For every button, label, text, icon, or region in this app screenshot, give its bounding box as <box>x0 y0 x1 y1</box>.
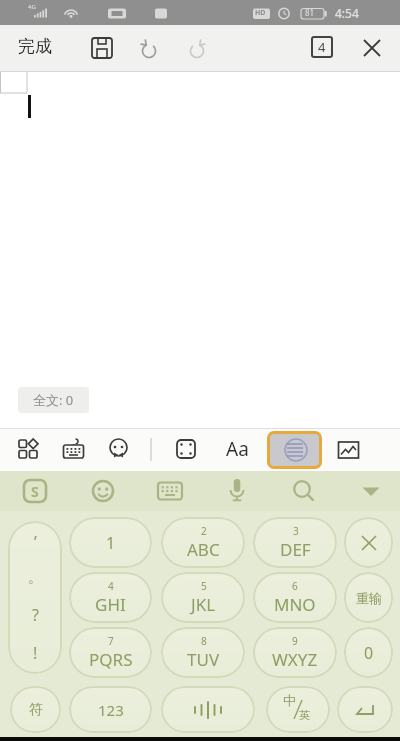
staticText: JKL <box>191 593 216 616</box>
button[interactable] <box>138 38 160 60</box>
staticText: 1 <box>106 532 116 554</box>
button[interactable] <box>186 38 208 60</box>
staticText: 全文: 0 <box>33 391 74 409</box>
button[interactable] <box>17 438 39 460</box>
staticText: 6 <box>292 579 298 593</box>
staticText: 4G <box>28 3 36 11</box>
button[interactable] <box>175 438 197 460</box>
staticText: GHI <box>95 593 126 616</box>
staticText: S <box>31 482 39 501</box>
staticText: DEF <box>280 538 311 561</box>
button[interactable]: 1 <box>69 517 152 568</box>
button[interactable]: 4 <box>69 572 152 623</box>
button[interactable] <box>337 440 360 463</box>
staticText: ? <box>32 604 39 626</box>
staticText: 4:54 <box>335 5 359 21</box>
staticText: PQRS <box>89 648 133 671</box>
button[interactable]: 123 <box>69 686 152 733</box>
button[interactable] <box>62 438 85 461</box>
staticText: 中 <box>283 692 296 708</box>
button[interactable] <box>157 481 183 501</box>
staticText: HD <box>255 8 266 18</box>
button[interactable]: 0 <box>344 627 393 678</box>
button[interactable] <box>337 686 393 733</box>
staticText: 5 <box>201 579 207 593</box>
button[interactable] <box>344 517 393 568</box>
button[interactable] <box>292 479 316 503</box>
staticText: 9 <box>292 634 298 648</box>
button[interactable] <box>361 486 381 498</box>
staticText: 8 <box>201 634 207 648</box>
staticText: 81 <box>305 7 315 18</box>
staticText: TUV <box>187 648 220 671</box>
staticText: 3 <box>293 524 299 538</box>
button[interactable] <box>227 478 247 504</box>
staticText: 英 <box>299 708 310 722</box>
button[interactable] <box>90 36 114 60</box>
button[interactable] <box>361 37 383 59</box>
staticText: 0 <box>364 642 374 664</box>
staticText: 符 <box>29 701 43 719</box>
staticText: 4 <box>108 579 114 593</box>
button[interactable]: 5 <box>161 572 245 623</box>
button[interactable]: 2 <box>161 517 245 568</box>
staticText: MNO <box>274 593 316 616</box>
button[interactable] <box>267 431 322 469</box>
staticText: 4 <box>318 38 326 56</box>
staticText: 7 <box>108 634 114 648</box>
button[interactable]: 6 <box>253 572 337 623</box>
button[interactable]: 3 <box>253 517 337 568</box>
staticText: ! <box>33 642 38 664</box>
staticText: 2 <box>201 524 207 538</box>
staticText: 重输 <box>356 590 382 606</box>
button[interactable]: 7 <box>69 627 152 678</box>
button[interactable]: 重输 <box>344 572 393 623</box>
staticText: 。 <box>28 569 42 587</box>
button[interactable] <box>107 438 130 461</box>
button[interactable]: ’ <box>8 521 62 674</box>
button[interactable]: 4 <box>311 36 333 58</box>
button[interactable]: 9 <box>253 627 337 678</box>
button[interactable]: 完成 <box>18 36 52 57</box>
button[interactable]: 8 <box>161 627 245 678</box>
staticText: WXYZ <box>272 648 318 671</box>
button[interactable]: 符 <box>10 686 61 733</box>
staticText: ’ <box>34 531 37 553</box>
button[interactable] <box>161 686 255 733</box>
button[interactable] <box>91 479 115 503</box>
button[interactable]: 中 <box>266 686 330 733</box>
staticText: ABC <box>187 538 220 561</box>
button[interactable]: Aa <box>226 436 249 462</box>
button[interactable]: S <box>23 479 47 503</box>
staticText: 123 <box>98 700 124 720</box>
